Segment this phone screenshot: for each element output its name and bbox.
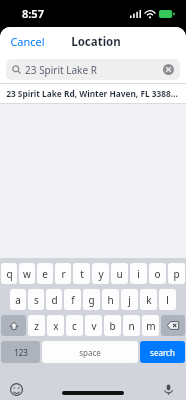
button[interactable]: Dictation <box>162 383 175 396</box>
button[interactable]: z <box>28 315 45 336</box>
staticText: 23 Spirit Lake R <box>25 63 97 77</box>
button[interactable]: a <box>10 289 26 310</box>
button[interactable]: Cancel <box>0 30 55 53</box>
staticText: l <box>166 293 169 307</box>
button[interactable]: k <box>140 289 157 310</box>
staticText: v <box>91 319 97 333</box>
button[interactable]: p <box>168 263 185 284</box>
staticText: e <box>42 267 48 281</box>
button[interactable]: 23 Spirit Lake R <box>6 59 180 80</box>
button[interactable]: Clear text <box>163 64 174 75</box>
button[interactable]: search <box>140 341 185 363</box>
button[interactable]: h <box>102 289 119 310</box>
staticText: w <box>23 267 31 281</box>
staticText: p <box>173 267 180 281</box>
staticText: f <box>71 293 75 307</box>
staticText: j <box>128 293 131 307</box>
staticText: space <box>79 347 101 358</box>
staticText: x <box>53 319 59 333</box>
button[interactable]: n <box>123 315 140 336</box>
staticText: d <box>51 293 58 307</box>
button[interactable]: 123 <box>1 341 40 363</box>
staticText: t <box>80 267 84 281</box>
staticText: z <box>34 319 39 333</box>
button[interactable]: Shift <box>1 315 26 336</box>
button[interactable]: o <box>149 263 166 284</box>
button[interactable]: Delete <box>161 315 185 336</box>
button[interactable]: d <box>46 289 62 310</box>
staticText: 23 Spirit Lake Rd, Winter Haven, FL 3388… <box>6 88 178 99</box>
staticText: c <box>72 319 77 333</box>
button[interactable]: t <box>73 263 90 284</box>
staticText: 8:57 <box>22 6 44 21</box>
staticText: s <box>34 293 39 307</box>
button[interactable]: x <box>47 315 64 336</box>
staticText: r <box>61 267 66 281</box>
button[interactable]: v <box>85 315 102 336</box>
button[interactable]: 23 Spirit Lake Rd, Winter Haven, FL 3388… <box>0 84 186 103</box>
staticText: search <box>150 347 175 358</box>
button[interactable]: u <box>111 263 128 284</box>
staticText: Location <box>71 34 121 50</box>
button[interactable]: e <box>37 263 53 284</box>
staticText: i <box>137 267 140 281</box>
staticText: k <box>146 293 152 307</box>
staticText: h <box>107 293 114 307</box>
button[interactable]: l <box>159 289 176 310</box>
staticText: y <box>98 267 104 281</box>
button[interactable]: space <box>42 341 138 363</box>
staticText: a <box>15 293 21 307</box>
staticText: 123 <box>14 347 28 358</box>
staticText: u <box>116 267 123 281</box>
button[interactable]: s <box>28 289 44 310</box>
staticText: n <box>128 319 135 333</box>
staticText: q <box>6 267 13 281</box>
button[interactable]: f <box>64 289 81 310</box>
staticText: o <box>154 267 161 281</box>
button[interactable]: y <box>92 263 109 284</box>
staticText: b <box>109 319 116 333</box>
button[interactable]: c <box>66 315 83 336</box>
button[interactable]: b <box>104 315 121 336</box>
button[interactable]: m <box>142 315 159 336</box>
button[interactable]: g <box>83 289 100 310</box>
staticText: Cancel <box>10 34 45 49</box>
button[interactable]: r <box>55 263 71 284</box>
button[interactable]: q <box>1 263 17 284</box>
button[interactable]: Emoji keyboard <box>10 383 23 396</box>
staticText: m <box>146 319 156 333</box>
button[interactable]: i <box>130 263 147 284</box>
button[interactable]: w <box>19 263 35 284</box>
button[interactable]: j <box>121 289 138 310</box>
staticText: g <box>88 293 95 307</box>
